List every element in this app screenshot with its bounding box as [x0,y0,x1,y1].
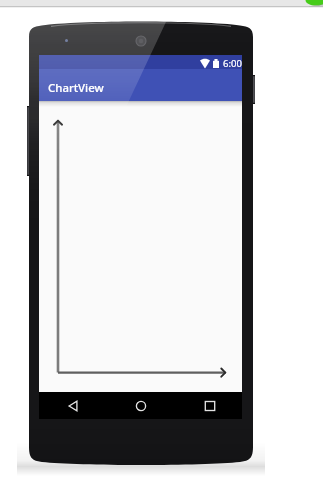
button[interactable]: ChartView [39,69,242,101]
staticText: 6:00 [223,57,242,70]
staticText: ChartView [48,80,104,96]
button[interactable]: Home [113,392,169,419]
button[interactable]: Recent apps [182,392,238,419]
button[interactable]: Back [45,392,101,419]
